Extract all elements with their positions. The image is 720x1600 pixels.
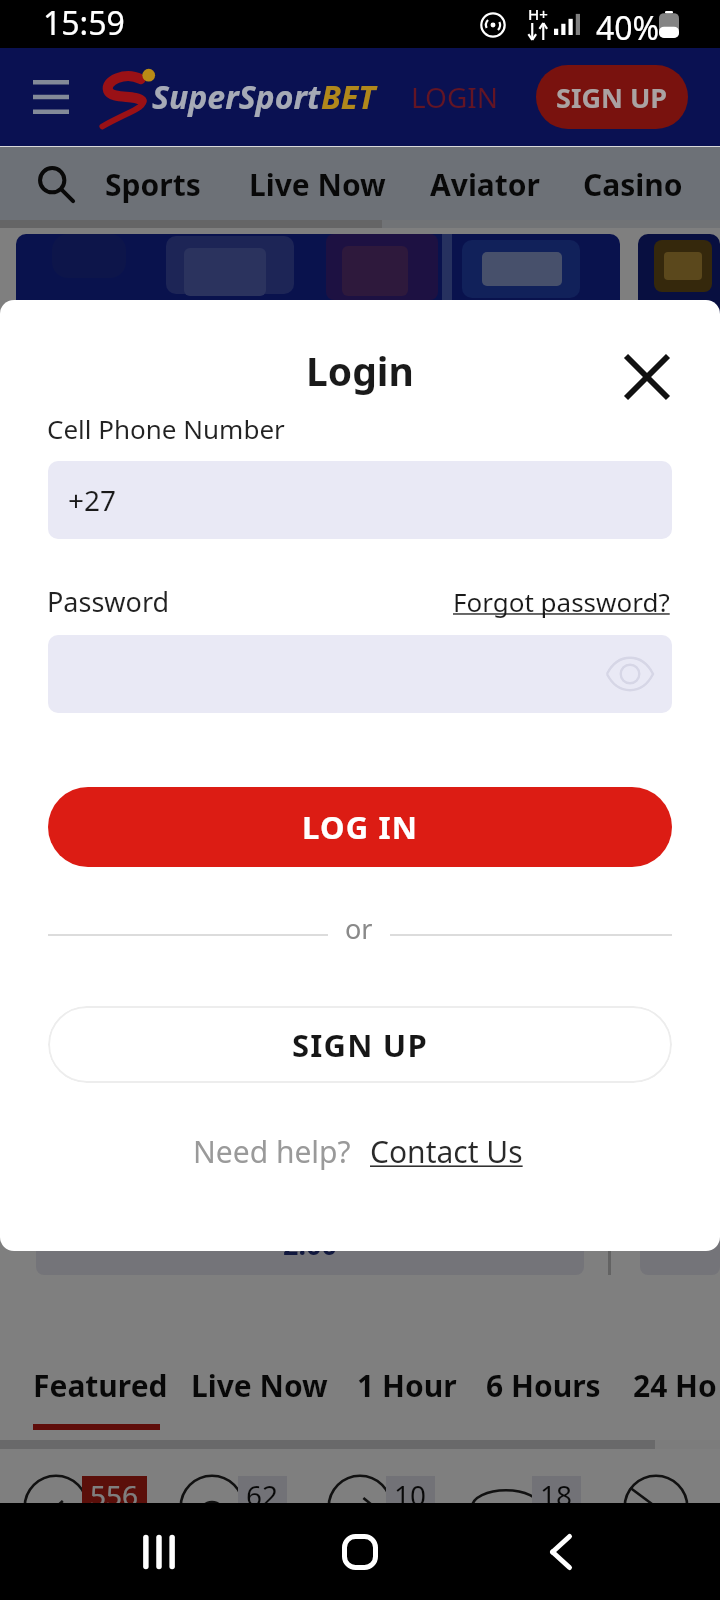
button[interactable]: 1 Hour (357, 1365, 454, 1405)
staticText: Aviator (430, 164, 537, 205)
button[interactable]: Sport category 4 (446, 1455, 586, 1515)
button[interactable]: SIGN UP (48, 1006, 672, 1083)
staticText: Cell Phone Number (47, 411, 285, 446)
button[interactable]: Back (526, 1517, 596, 1587)
button[interactable]: LOGIN (405, 71, 505, 123)
staticText: 556 (90, 1476, 139, 1508)
button[interactable]: Show password (604, 648, 656, 700)
staticText: Need help? (193, 1131, 351, 1172)
staticText: or (345, 910, 373, 947)
staticText: SuperSport (152, 75, 321, 119)
button[interactable]: Recent apps (124, 1517, 194, 1587)
button[interactable]: Featured (33, 1365, 160, 1405)
button[interactable]: Live Now (249, 164, 384, 206)
button[interactable]: Contact Us (370, 1131, 523, 1172)
staticText: 10 (394, 1476, 427, 1508)
button[interactable]: Casino (583, 164, 686, 206)
staticText: Featured (33, 1365, 160, 1405)
button[interactable]: +27 (48, 461, 672, 539)
staticText: 40% (596, 6, 660, 50)
button[interactable]: 24 Ho (633, 1365, 720, 1405)
staticText: 62 (246, 1476, 279, 1508)
button[interactable]: Search (28, 156, 84, 212)
button[interactable]: Sport category 1 (0, 1455, 136, 1515)
staticText: Login (306, 344, 414, 397)
button[interactable]: Aviator (430, 164, 537, 206)
staticText: 18 (540, 1476, 573, 1508)
staticText: 1 Hour (357, 1365, 454, 1405)
staticText: Password (47, 583, 170, 620)
button[interactable]: SIGN UP (536, 65, 688, 129)
button[interactable]: LOG IN (48, 787, 672, 867)
staticText: Live Now (249, 164, 384, 205)
button[interactable]: Home (325, 1517, 395, 1587)
staticText: LOG IN (302, 806, 419, 848)
staticText: Forgot password? (453, 584, 670, 619)
button[interactable]: Sport category 2 (152, 1455, 292, 1515)
staticText: SIGN UP (556, 79, 668, 116)
staticText: Contact Us (370, 1131, 523, 1172)
staticText: 15:59 (43, 1, 125, 45)
staticText: 2.00 (283, 1226, 337, 1263)
button[interactable]: Sports (105, 164, 203, 206)
button[interactable]: Close (611, 341, 683, 413)
button[interactable]: Live Now (191, 1365, 324, 1405)
button[interactable]: Forgot password? (453, 584, 670, 619)
button[interactable]: 6 Hours (486, 1365, 601, 1405)
button[interactable]: Sport category 5 (596, 1455, 720, 1515)
staticText: 6 Hours (486, 1365, 601, 1405)
staticText: 24 Ho (633, 1365, 717, 1405)
staticText: Casino (583, 164, 683, 205)
staticText: +27 (68, 481, 117, 519)
staticText: LOGIN (411, 78, 499, 116)
button[interactable]: Sport category 3 (300, 1455, 440, 1515)
staticText: H+ (528, 4, 548, 24)
staticText: BET (321, 75, 376, 119)
staticText: Live Now (191, 1365, 324, 1405)
button[interactable]: Menu (20, 66, 82, 128)
staticText: SIGN UP (292, 1024, 428, 1066)
staticText: Sports (105, 164, 201, 205)
